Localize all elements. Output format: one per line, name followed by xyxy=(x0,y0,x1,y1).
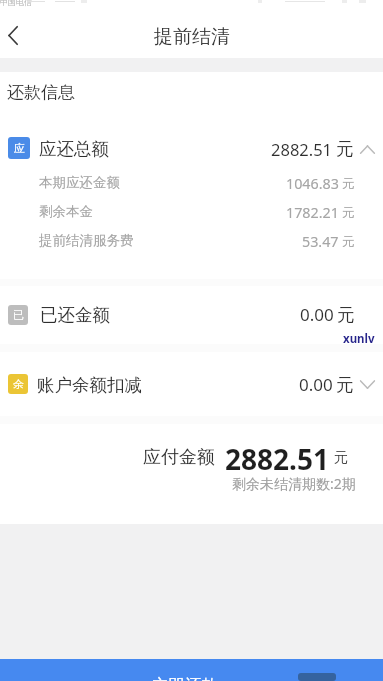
staticText: 2882.51 xyxy=(225,440,329,478)
staticText: 元 xyxy=(342,176,355,192)
staticText: 元 xyxy=(336,138,354,160)
staticText: 余 xyxy=(13,377,24,391)
staticText: 账户余额扣减 xyxy=(37,374,142,396)
staticText: 应还总额 xyxy=(39,138,109,160)
button[interactable]: Back xyxy=(0,22,26,48)
staticText: 剩余未结清期数:2期 xyxy=(232,474,356,493)
staticText: 0.00 xyxy=(300,303,334,326)
staticText: 0.00 xyxy=(299,373,333,396)
staticText: 1046.83 xyxy=(286,174,339,193)
button[interactable]: 余 xyxy=(0,367,383,401)
staticText: 本期应还金额 xyxy=(39,174,120,191)
staticText: 元 xyxy=(336,374,354,396)
staticText: 应 xyxy=(14,141,25,155)
staticText: 元 xyxy=(342,205,355,221)
staticText: 1782.21 xyxy=(286,203,339,222)
staticText: 应付金额 xyxy=(143,446,215,469)
staticText: 53.47 xyxy=(302,232,339,251)
staticText: 提前结清服务费 xyxy=(39,232,134,249)
staticText: 元 xyxy=(342,234,355,250)
staticText: 已还金额 xyxy=(40,304,110,326)
staticText: 元 xyxy=(334,449,348,467)
button[interactable]: 立即还款 xyxy=(0,659,383,681)
staticText: xunlv xyxy=(343,331,375,347)
staticText: 中国电信 xyxy=(0,0,32,7)
staticText: 提前结清 xyxy=(154,25,230,49)
button[interactable]: 应 xyxy=(0,132,383,166)
staticText: 元 xyxy=(337,304,355,326)
staticText: 已 xyxy=(13,308,24,322)
button[interactable]: 已 xyxy=(0,297,383,331)
staticText: 剩余本金 xyxy=(39,203,93,220)
staticText: 立即还款 xyxy=(152,675,218,681)
staticText: 还款信息 xyxy=(7,82,75,103)
staticText: 2882.51 xyxy=(271,138,333,160)
